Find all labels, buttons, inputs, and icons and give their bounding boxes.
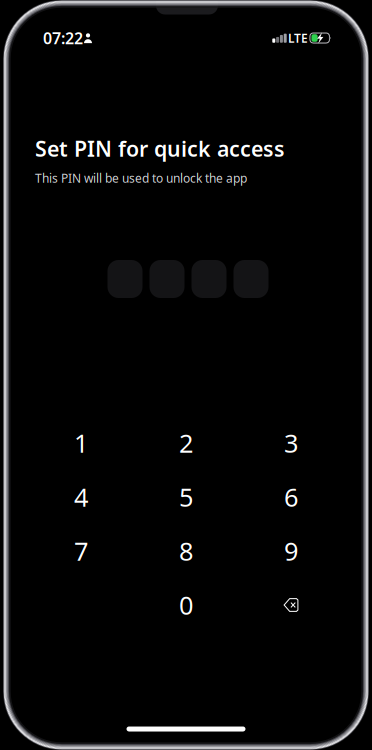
staticText: 07:22 <box>43 27 83 49</box>
button[interactable]: Delete <box>251 581 331 629</box>
button[interactable]: 6 <box>251 473 331 521</box>
button[interactable]: 4 <box>41 473 121 521</box>
staticText: 0 <box>179 588 193 622</box>
staticText: 6 <box>284 480 298 514</box>
staticText: This PIN will be used to unlock the app <box>35 170 247 186</box>
staticText: 2 <box>179 426 193 460</box>
button[interactable]: 7 <box>41 527 121 575</box>
button[interactable]: 0 <box>146 581 226 629</box>
staticText: 3 <box>284 426 298 460</box>
button[interactable]: 5 <box>146 473 226 521</box>
staticText: 5 <box>179 480 193 514</box>
button[interactable]: 1 <box>41 419 121 467</box>
staticText: LTE <box>288 30 308 46</box>
staticText: Set PIN for quick access <box>35 134 285 163</box>
staticText: 9 <box>284 534 298 568</box>
button[interactable]: 8 <box>146 527 226 575</box>
button[interactable]: 3 <box>251 419 331 467</box>
staticText: 7 <box>74 534 88 568</box>
staticText: 4 <box>74 480 88 514</box>
button[interactable]: 2 <box>146 419 226 467</box>
staticText: 1 <box>74 426 88 460</box>
button[interactable]: 9 <box>251 527 331 575</box>
staticText: 8 <box>179 534 193 568</box>
